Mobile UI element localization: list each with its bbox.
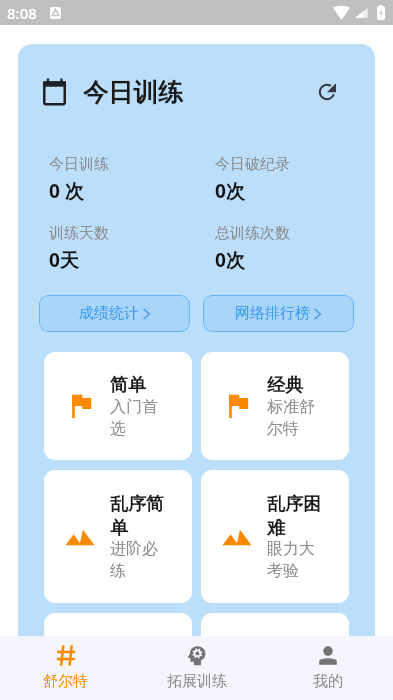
- button[interactable]: 网络排行榜: [203, 295, 354, 332]
- staticText: 标准舒尔特: [267, 397, 323, 439]
- staticText: 今日训练: [83, 77, 183, 108]
- staticText: 入门首选: [110, 397, 166, 439]
- staticText: 经典: [267, 374, 303, 397]
- staticText: 0次: [215, 247, 245, 273]
- staticText: 乱序简单: [110, 493, 166, 539]
- button[interactable]: 高手困难: [201, 613, 349, 636]
- staticText: 0 次: [49, 178, 84, 204]
- staticText: 眼力大考验: [267, 539, 323, 581]
- staticText: 8:08: [7, 3, 37, 23]
- button[interactable]: 乱序简单: [44, 470, 192, 603]
- button[interactable]: Refresh: [309, 74, 345, 110]
- staticText: 今日训练: [49, 155, 109, 174]
- button[interactable]: 成绩统计: [39, 295, 190, 332]
- staticText: 今日破纪录: [215, 155, 290, 174]
- button[interactable]: 拓展训练: [131, 636, 262, 700]
- staticText: 拓展训练: [167, 672, 227, 691]
- button[interactable]: 我的: [262, 636, 393, 700]
- staticText: 进阶必练: [110, 539, 166, 581]
- button[interactable]: 舒尔特: [0, 636, 131, 700]
- staticText: 我的: [313, 672, 343, 691]
- button[interactable]: 乱序困难: [201, 470, 349, 603]
- staticText: 0次: [215, 178, 245, 204]
- staticText: 总训练次数: [215, 224, 290, 243]
- staticText: 舒尔特: [43, 672, 88, 691]
- staticText: 成绩统计: [79, 304, 139, 323]
- staticText: 网络排行榜: [235, 304, 310, 323]
- staticText: 0天: [49, 247, 79, 273]
- button[interactable]: 高手简单: [44, 613, 192, 636]
- button[interactable]: 简单: [44, 352, 192, 460]
- staticText: 训练天数: [49, 224, 109, 243]
- staticText: 简单: [110, 374, 146, 397]
- button[interactable]: 经典: [201, 352, 349, 460]
- staticText: 乱序困难: [267, 493, 323, 539]
